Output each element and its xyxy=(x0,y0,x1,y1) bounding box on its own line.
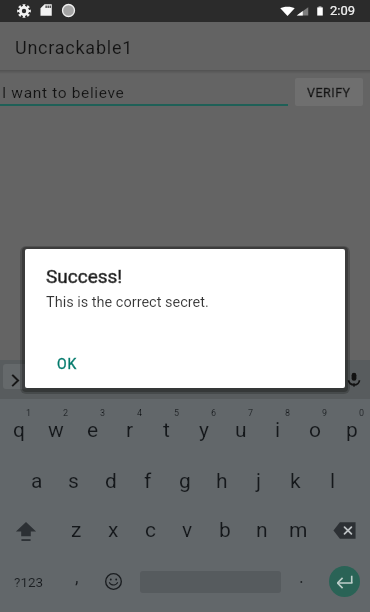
button[interactable]: v xyxy=(169,505,206,556)
staticText: k xyxy=(290,469,301,494)
button[interactable]: OK xyxy=(47,347,88,381)
button[interactable]: r xyxy=(111,403,148,454)
staticText: l xyxy=(330,469,336,494)
button[interactable]: i xyxy=(259,403,296,454)
staticText: 3 xyxy=(100,408,106,419)
button[interactable]: l xyxy=(314,454,351,505)
button[interactable]: m xyxy=(280,505,317,556)
button[interactable]: x xyxy=(95,505,132,556)
button[interactable]: u xyxy=(222,403,259,454)
button[interactable]: Enter xyxy=(318,556,370,607)
staticText: 7 xyxy=(248,408,254,419)
staticText: t xyxy=(163,418,170,443)
staticText: x xyxy=(108,518,119,543)
button[interactable]: e xyxy=(74,403,111,454)
staticText: I want to believe xyxy=(2,84,125,102)
button[interactable]: Space xyxy=(134,557,286,606)
button[interactable]: h xyxy=(203,454,240,505)
staticText: 1 xyxy=(26,408,32,419)
staticText: n xyxy=(256,518,268,543)
button[interactable]: VERIFY xyxy=(295,78,363,106)
button[interactable]: f xyxy=(129,454,166,505)
staticText: o xyxy=(309,418,321,443)
button[interactable]: Emoji xyxy=(96,556,130,607)
staticText: 0 xyxy=(359,408,365,419)
staticText: s xyxy=(68,469,79,494)
button[interactable]: Expand suggestions xyxy=(1,366,29,394)
staticText: i xyxy=(275,418,281,443)
staticText: f xyxy=(144,469,152,494)
staticText: 9 xyxy=(322,408,328,419)
staticText: 6 xyxy=(211,408,217,419)
staticText: VERIFY xyxy=(307,85,351,100)
staticText: b xyxy=(219,518,231,543)
staticText: r xyxy=(126,418,134,443)
staticText: 8 xyxy=(285,408,291,419)
staticText: , xyxy=(75,566,79,587)
button[interactable]: t xyxy=(148,403,185,454)
button[interactable]: Backspace xyxy=(318,505,370,556)
button[interactable]: c xyxy=(132,505,169,556)
staticText: a xyxy=(31,469,43,494)
button[interactable]: o xyxy=(296,403,333,454)
staticText: 2:09 xyxy=(330,3,356,18)
staticText: y xyxy=(199,418,209,443)
staticText: g xyxy=(179,469,191,494)
staticText: p xyxy=(346,418,358,443)
button[interactable]: n xyxy=(243,505,280,556)
button[interactable]: b xyxy=(206,505,243,556)
button[interactable]: q xyxy=(0,403,37,454)
staticText: ?123 xyxy=(14,574,44,590)
button[interactable]: Voice input xyxy=(340,366,368,394)
staticText: u xyxy=(235,418,247,443)
staticText: h xyxy=(216,469,228,494)
staticText: Success! xyxy=(46,265,123,287)
button[interactable]: d xyxy=(92,454,129,505)
staticText: c xyxy=(145,518,156,543)
staticText: e xyxy=(87,418,99,443)
staticText: j xyxy=(256,469,262,494)
staticText: m xyxy=(289,518,308,543)
staticText: VERIFY xyxy=(307,85,351,100)
button[interactable]: g xyxy=(166,454,203,505)
button[interactable]: ?123 xyxy=(2,556,56,607)
staticText: z xyxy=(71,518,82,543)
staticText: This is the correct secret. xyxy=(46,294,209,311)
button[interactable]: k xyxy=(277,454,314,505)
button[interactable]: a xyxy=(19,454,55,505)
button[interactable]: z xyxy=(58,505,95,556)
staticText: d xyxy=(105,469,117,494)
staticText: OK xyxy=(57,356,78,372)
staticText: OK xyxy=(57,356,78,372)
button[interactable]: y xyxy=(185,403,222,454)
button[interactable]: w xyxy=(37,403,74,454)
button[interactable]: j xyxy=(240,454,277,505)
staticText: 5 xyxy=(174,408,180,419)
button[interactable]: Shift xyxy=(0,505,52,556)
staticText: 4 xyxy=(137,408,143,419)
button[interactable]: , xyxy=(58,556,96,607)
staticText: Uncrackable1 xyxy=(15,37,134,58)
button[interactable]: s xyxy=(55,454,92,505)
staticText: w xyxy=(48,418,64,443)
staticText: v xyxy=(182,518,193,543)
staticText: q xyxy=(13,418,25,443)
staticText: . xyxy=(299,566,304,587)
staticText: Success! xyxy=(46,265,123,287)
button[interactable]: p xyxy=(333,403,370,454)
staticText: 2 xyxy=(63,408,69,419)
